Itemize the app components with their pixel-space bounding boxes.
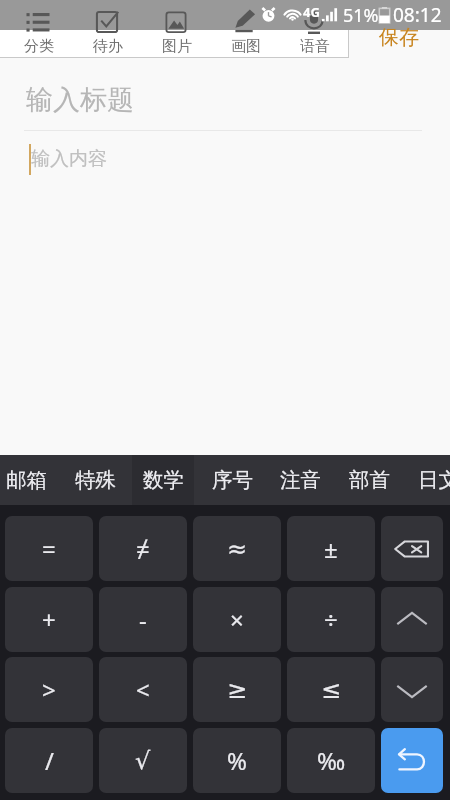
staticText: ≥ xyxy=(227,676,248,704)
staticText: 部首 xyxy=(349,467,390,493)
staticText: √ xyxy=(135,747,151,775)
staticText: 待办 xyxy=(93,37,123,56)
button[interactable]: ‰ xyxy=(287,728,375,793)
staticText: < xyxy=(136,673,150,706)
button[interactable]: 注音 xyxy=(269,455,331,505)
staticText: ≈ xyxy=(227,535,248,563)
button[interactable]: ÷ xyxy=(287,587,375,652)
button[interactable]: > xyxy=(5,657,93,722)
button[interactable]: 语音 xyxy=(280,0,349,57)
staticText: 注音 xyxy=(280,467,321,493)
staticText: / xyxy=(45,744,54,777)
button[interactable]: 图片 xyxy=(142,0,211,57)
staticText: 数学 xyxy=(143,467,184,493)
button[interactable]: 日文 xyxy=(407,455,450,505)
button[interactable]: ± xyxy=(287,516,375,581)
button[interactable]: / xyxy=(5,728,93,793)
staticText: 08:12 xyxy=(393,2,442,28)
staticText: 日文 xyxy=(418,467,450,493)
staticText: ÷ xyxy=(324,603,338,636)
staticText: 画图 xyxy=(231,37,261,56)
button[interactable]: < xyxy=(99,657,187,722)
button[interactable]: 保存 xyxy=(371,24,427,50)
button[interactable]: Scroll up xyxy=(381,587,443,652)
staticText: + xyxy=(42,603,56,636)
staticText: 4G xyxy=(303,3,320,21)
staticText: × xyxy=(230,603,244,636)
staticText: ≠ xyxy=(136,532,150,565)
button[interactable]: = xyxy=(5,516,93,581)
staticText: 图片 xyxy=(162,37,192,56)
button[interactable]: √ xyxy=(99,728,187,793)
button[interactable]: × xyxy=(193,587,281,652)
button[interactable]: 画图 xyxy=(211,0,280,57)
staticText: ‰ xyxy=(317,744,346,777)
staticText: % xyxy=(227,744,247,777)
staticText: 语音 xyxy=(300,37,330,56)
button[interactable]: 分类 xyxy=(4,0,73,57)
staticText: = xyxy=(42,532,56,565)
button[interactable]: % xyxy=(193,728,281,793)
button[interactable]: ≠ xyxy=(99,516,187,581)
staticText: ≤ xyxy=(321,676,342,704)
button[interactable]: Backspace xyxy=(381,516,443,581)
button[interactable]: 特殊 xyxy=(64,455,126,505)
staticText: 输入标题 xyxy=(26,83,134,117)
staticText: 51% xyxy=(343,3,379,28)
button[interactable]: ≈ xyxy=(193,516,281,581)
staticText: 分类 xyxy=(24,37,54,56)
staticText: ± xyxy=(324,532,338,565)
button[interactable]: 待办 xyxy=(73,0,142,57)
button[interactable]: 部首 xyxy=(338,455,400,505)
staticText: 序号 xyxy=(212,467,253,493)
staticText: 保存 xyxy=(379,25,419,50)
button[interactable]: Scroll down xyxy=(381,657,443,722)
button[interactable]: + xyxy=(5,587,93,652)
staticText: 特殊 xyxy=(75,467,116,493)
staticText: - xyxy=(139,603,147,636)
button[interactable]: 邮箱 xyxy=(0,455,57,505)
button[interactable]: Enter xyxy=(381,728,443,793)
button[interactable]: ≥ xyxy=(193,657,281,722)
staticText: 邮箱 xyxy=(6,467,47,493)
button[interactable]: - xyxy=(99,587,187,652)
button[interactable]: ≤ xyxy=(287,657,375,722)
staticText: 输入内容 xyxy=(31,147,107,171)
button[interactable]: 序号 xyxy=(201,455,263,505)
button[interactable]: 数学 xyxy=(132,455,194,505)
staticText: > xyxy=(42,673,56,706)
